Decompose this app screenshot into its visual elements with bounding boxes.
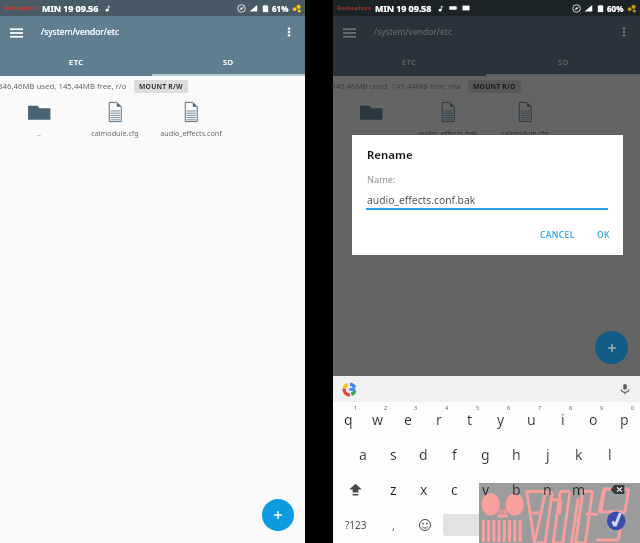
- staticText: CANCEL: [540, 229, 575, 241]
- button[interactable]: d: [408, 437, 439, 472]
- button[interactable]: CANCEL: [533, 224, 582, 246]
- staticText: n: [543, 480, 552, 499]
- staticText: b: [512, 480, 521, 499]
- button[interactable]: OK: [590, 224, 617, 246]
- staticText: 9: [600, 404, 604, 411]
- button[interactable]: h: [501, 437, 532, 472]
- staticText: SD: [223, 57, 234, 67]
- staticText: ETC: [69, 57, 84, 67]
- staticText: a: [359, 445, 367, 464]
- staticText: MOUNT R/W: [139, 82, 183, 91]
- button[interactable]: i: [547, 402, 578, 437]
- button[interactable]: t: [454, 402, 485, 437]
- staticText: 61%: [272, 3, 289, 14]
- staticText: g: [481, 445, 490, 464]
- staticText: h: [512, 445, 521, 464]
- button[interactable]: Open navigation drawer: [0, 16, 32, 48]
- staticText: Name:: [367, 173, 396, 186]
- staticText: audio_effects.conf: [160, 128, 222, 138]
- staticText: SD: [558, 57, 569, 67]
- button[interactable]: v: [470, 472, 501, 507]
- button[interactable]: y: [485, 402, 516, 437]
- button[interactable]: m: [563, 472, 594, 507]
- staticText: q: [344, 410, 353, 429]
- staticText: audio_effects.bak: [418, 128, 478, 138]
- button[interactable]: Emoji: [409, 507, 440, 543]
- staticText: /system/vendor/etc: [41, 26, 119, 38]
- staticText: 60%: [607, 3, 624, 14]
- button[interactable]: n: [532, 472, 563, 507]
- staticText: ..: [369, 128, 373, 138]
- button[interactable]: u: [516, 402, 547, 437]
- staticText: /system/vendor/etc: [374, 26, 452, 38]
- staticText: .: [577, 518, 580, 533]
- button[interactable]: g: [470, 437, 501, 472]
- staticText: r: [436, 410, 442, 429]
- staticText: u: [527, 410, 536, 429]
- button[interactable]: Space: [443, 514, 560, 536]
- button[interactable]: Backspace: [594, 472, 640, 507]
- staticText: calmodule.cfg: [91, 128, 139, 138]
- staticText: MIN 19 09.58: [375, 2, 432, 14]
- staticText: t: [467, 410, 473, 429]
- staticText: Rename: [367, 147, 413, 162]
- staticText: 8: [569, 404, 573, 411]
- staticText: f: [452, 445, 457, 464]
- staticText: v: [482, 480, 490, 499]
- button[interactable]: MOUNT R/W: [134, 80, 188, 93]
- staticText: ,: [392, 518, 395, 533]
- button[interactable]: ..: [0, 99, 77, 138]
- button[interactable]: a: [348, 437, 378, 472]
- staticText: 0: [631, 404, 635, 411]
- button[interactable]: b: [501, 472, 532, 507]
- button[interactable]: calmodule.cfg: [77, 99, 153, 138]
- staticText: Rodeophore: [4, 4, 39, 12]
- staticText: l: [608, 445, 612, 464]
- button[interactable]: x: [408, 472, 439, 507]
- staticText: z: [390, 480, 397, 499]
- staticText: m: [572, 480, 586, 499]
- staticText: e: [404, 410, 412, 429]
- staticText: Rodeophore: [337, 4, 372, 12]
- staticText: w: [372, 410, 384, 429]
- button[interactable]: s: [378, 437, 408, 472]
- staticText: 846,46MB used, 145,44MB free, r/w: [331, 81, 461, 92]
- button[interactable]: w: [363, 402, 393, 437]
- button[interactable]: k: [563, 437, 594, 472]
- button[interactable]: j: [532, 437, 563, 472]
- staticText: MIN 19 09.56: [42, 2, 99, 14]
- staticText: c: [451, 480, 458, 499]
- button[interactable]: o: [578, 402, 609, 437]
- button[interactable]: Shift: [333, 472, 378, 507]
- staticText: 4: [445, 404, 449, 411]
- button[interactable]: q: [333, 402, 363, 437]
- button[interactable]: ETC: [0, 48, 152, 76]
- staticText: 2: [384, 404, 388, 411]
- button[interactable]: Enter: [594, 507, 640, 543]
- button[interactable]: p: [609, 402, 640, 437]
- button[interactable]: e: [393, 402, 423, 437]
- staticText: ..: [37, 128, 41, 138]
- staticText: ?123: [345, 518, 367, 532]
- button[interactable]: f: [439, 437, 470, 472]
- staticText: calmodule.cfg: [501, 128, 549, 138]
- staticText: 5: [476, 404, 480, 411]
- button[interactable]: .: [563, 507, 594, 543]
- button[interactable]: z: [378, 472, 408, 507]
- button[interactable]: l: [594, 437, 625, 472]
- staticText: 846,46MB used, 145,44MB free, r/o: [0, 81, 127, 92]
- button[interactable]: r: [423, 402, 454, 437]
- staticText: s: [390, 445, 397, 464]
- staticText: d: [419, 445, 428, 464]
- staticText: ETC: [402, 57, 417, 67]
- button[interactable]: Add: [262, 499, 294, 531]
- staticText: x: [420, 480, 428, 499]
- button[interactable]: audio_effects.conf: [153, 99, 229, 138]
- button[interactable]: SD: [152, 48, 305, 76]
- button[interactable]: ,: [378, 507, 409, 543]
- staticText: 3: [414, 404, 418, 411]
- button[interactable]: ?123: [333, 507, 378, 543]
- button[interactable]: c: [439, 472, 470, 507]
- button[interactable]: More options: [273, 16, 305, 48]
- staticText: 7: [538, 404, 542, 411]
